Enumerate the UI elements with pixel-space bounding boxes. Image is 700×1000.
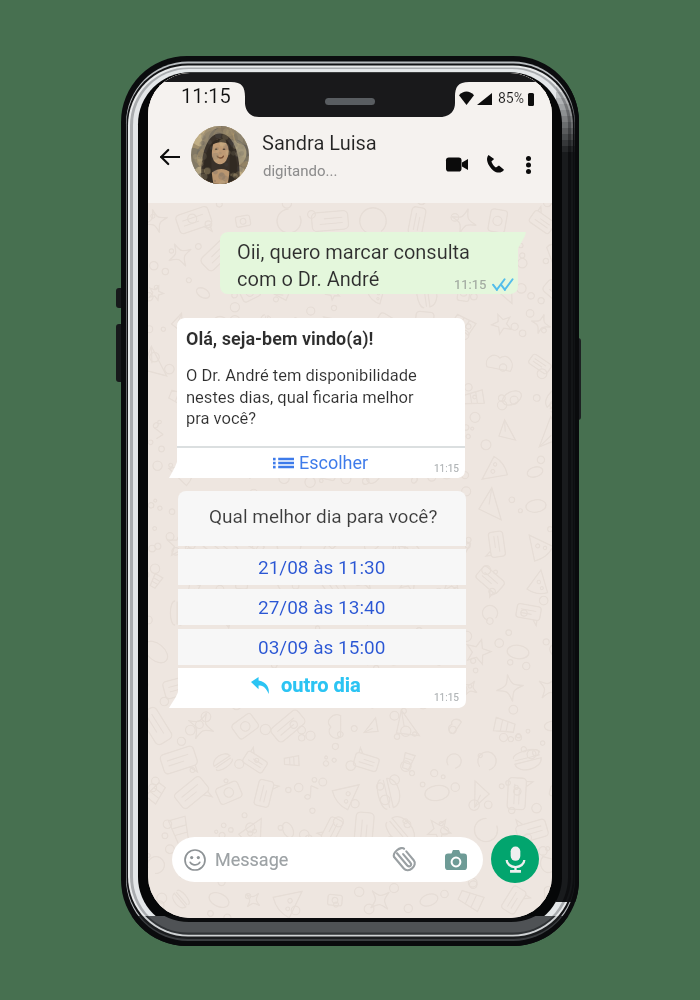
button[interactable]: outro dia <box>178 668 466 708</box>
staticText: Sandra Luisa <box>262 131 377 154</box>
button[interactable]: Attach file <box>390 845 420 875</box>
button[interactable]: Escolher <box>177 447 465 478</box>
button[interactable]: Video call <box>436 143 478 185</box>
staticText: Qual melhor dia para você? <box>209 505 438 527</box>
button[interactable]: Camera <box>441 845 471 875</box>
button[interactable]: 21/08 às 11:30 <box>178 549 466 585</box>
button[interactable]: More options <box>510 147 546 183</box>
staticText: digitando... <box>263 162 338 180</box>
staticText: 11:15 <box>454 277 487 292</box>
button[interactable]: 27/08 às 13:40 <box>178 589 466 625</box>
button[interactable]: 03/09 às 15:00 <box>178 629 466 665</box>
staticText: 85% <box>498 90 524 106</box>
staticText: 11:15 <box>181 84 231 107</box>
button[interactable]: Record voice message <box>491 835 539 883</box>
button[interactable]: Oii, quero marcar consulta com o Dr. And… <box>220 232 526 294</box>
button[interactable]: Message <box>172 837 483 882</box>
staticText: 27/08 às 13:40 <box>258 596 386 618</box>
staticText: Message <box>215 849 289 870</box>
button[interactable]: Back <box>148 135 192 179</box>
staticText: Oii, quero marcar consulta com o Dr. And… <box>237 240 470 291</box>
staticText: 11:15 <box>434 692 459 704</box>
staticText: Olá, seja-bem vindo(a)! <box>186 328 374 349</box>
button[interactable]: Profile photo <box>191 126 249 184</box>
staticText: 21/08 às 11:30 <box>258 556 386 578</box>
button[interactable]: Olá, seja-bem vindo(a)! <box>177 318 465 478</box>
staticText: Escolher <box>299 452 369 473</box>
staticText: 11:15 <box>434 463 459 475</box>
staticText: O Dr. André tem disponibilidade nestes d… <box>186 366 417 428</box>
button[interactable]: Voice call <box>474 143 516 185</box>
staticText: outro dia <box>281 673 361 696</box>
staticText: 03/09 às 15:00 <box>258 636 386 658</box>
